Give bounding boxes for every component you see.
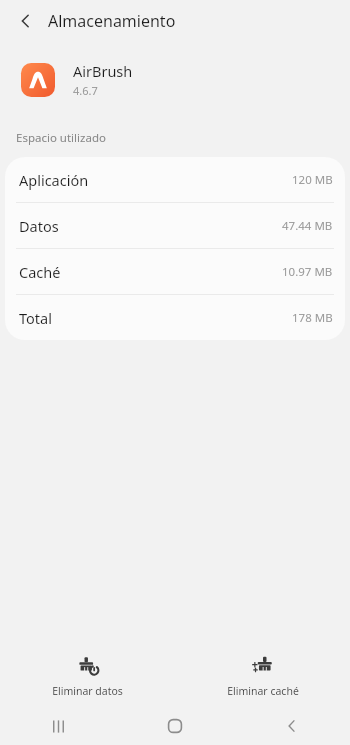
button[interactable]: Atrás (10, 5, 42, 37)
button[interactable]: Caché (5, 249, 345, 294)
button[interactable]: Datos (5, 203, 345, 248)
staticText: 178 MB (292, 310, 333, 326)
staticText: AirBrush (73, 61, 133, 81)
other: Eliminar datos (77, 655, 99, 677)
staticText: Total (19, 308, 52, 328)
staticText: Eliminar caché (227, 684, 299, 698)
staticText: Espacio utilizado (16, 130, 106, 146)
staticText: 4.6.7 (73, 83, 98, 98)
button[interactable]: Aplicación (5, 157, 345, 202)
button[interactable]: Recientes (0, 707, 116, 745)
staticText: Eliminar datos (52, 684, 123, 698)
button[interactable]: Total (5, 295, 345, 340)
staticText: Almacenamiento (48, 10, 176, 32)
staticText: Datos (19, 216, 59, 236)
staticText: Aplicación (19, 170, 89, 190)
staticText: Caché (19, 262, 61, 282)
staticText: 47.44 MB (282, 218, 333, 234)
other: Eliminar caché (252, 655, 274, 677)
button[interactable]: Atrás (233, 707, 350, 745)
button[interactable]: Eliminar caché (175, 649, 350, 704)
staticText: 10.97 MB (282, 264, 333, 280)
button[interactable]: Inicio (116, 707, 233, 745)
staticText: 120 MB (292, 172, 333, 188)
button[interactable]: Eliminar datos (0, 649, 175, 704)
